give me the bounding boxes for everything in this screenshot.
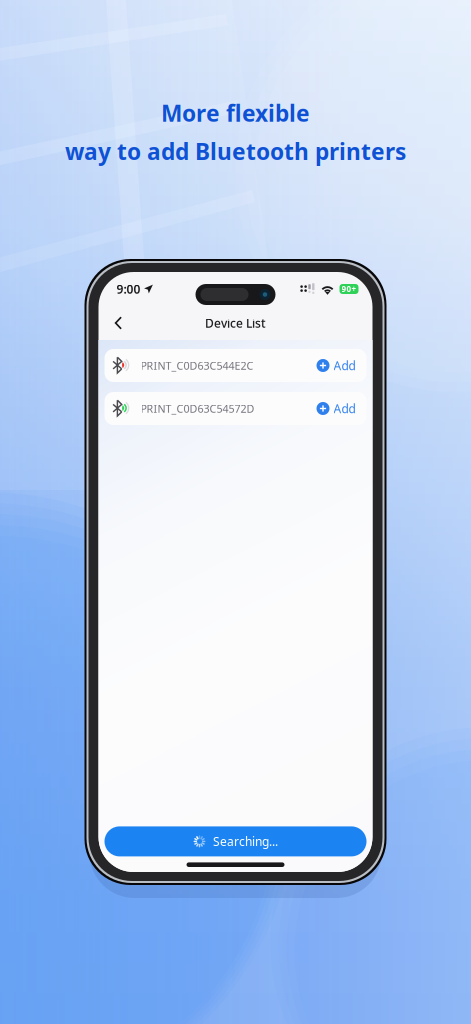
staticText: Add bbox=[333, 400, 355, 416]
staticText: PRINT_C0D63C54572D bbox=[140, 401, 254, 416]
button[interactable]: PRINT_C0D63C54572D bbox=[104, 392, 366, 425]
staticText: More flexible bbox=[161, 98, 310, 128]
button[interactable]: Searching... bbox=[104, 826, 366, 856]
staticText: PRINT_C0D63C544E2C bbox=[140, 358, 253, 373]
staticText: 90+ bbox=[341, 284, 356, 294]
staticText: way to add Bluetooth printers bbox=[65, 136, 406, 166]
staticText: Add bbox=[333, 357, 355, 373]
button[interactable]: PRINT_C0D63C544E2C bbox=[104, 349, 366, 382]
staticText: Searching... bbox=[213, 833, 278, 849]
staticText: Device List bbox=[205, 315, 266, 331]
staticText: 9:00 bbox=[116, 281, 140, 297]
button[interactable]: Back bbox=[106, 311, 130, 335]
